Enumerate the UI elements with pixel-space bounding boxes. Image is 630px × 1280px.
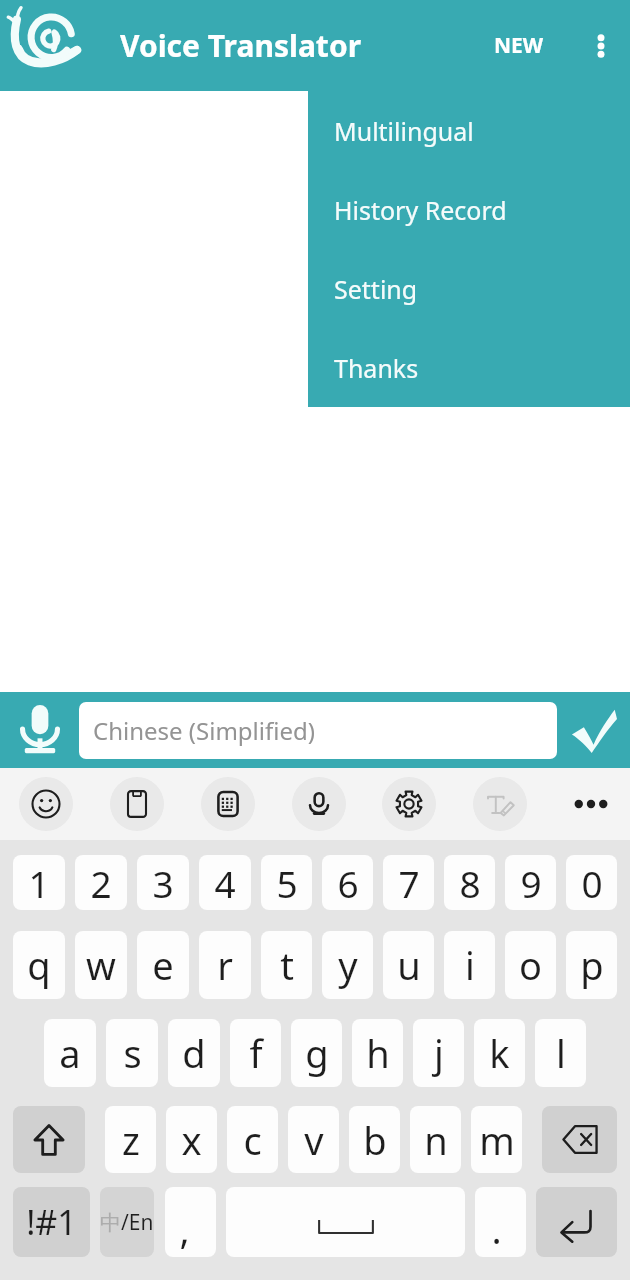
button[interactable]: 7 — [383, 855, 434, 910]
staticText: 3 — [152, 858, 174, 908]
button[interactable]: t — [261, 931, 312, 999]
button[interactable]: Multilingual — [308, 91, 630, 170]
button[interactable]: Setting — [308, 249, 630, 328]
staticText: 4 — [214, 858, 236, 908]
staticText: Voice Translator — [120, 25, 362, 66]
staticText: f — [249, 1027, 263, 1079]
staticText: b — [363, 1114, 387, 1166]
button[interactable]: 2 — [75, 855, 127, 910]
staticText: NEW — [494, 31, 544, 60]
button[interactable]: Confirm — [557, 692, 630, 768]
button[interactable]: App logo — [0, 0, 120, 91]
staticText: 7 — [398, 858, 420, 908]
button[interactable]: x — [166, 1106, 217, 1173]
button[interactable]: Chinese (Simplified) — [79, 702, 557, 759]
button[interactable]: h — [352, 1019, 403, 1087]
staticText: j — [434, 1027, 444, 1079]
staticText: Chinese (Simplified) — [93, 714, 315, 747]
staticText: r — [217, 939, 233, 991]
staticText: g — [305, 1027, 329, 1079]
button[interactable]: Handwriting — [473, 777, 527, 831]
button[interactable]: 1 — [13, 855, 65, 910]
button[interactable]: l — [535, 1019, 586, 1087]
staticText: e — [152, 939, 174, 991]
button[interactable]: u — [383, 931, 434, 999]
button[interactable]: More — [564, 777, 618, 831]
staticText: 5 — [276, 858, 298, 908]
staticText: /En — [121, 1208, 154, 1237]
button[interactable]: b — [349, 1106, 400, 1173]
staticText: o — [519, 939, 542, 991]
button[interactable]: 4 — [199, 855, 251, 910]
button[interactable]: 8 — [444, 855, 495, 910]
button[interactable]: Voice input — [292, 777, 346, 831]
button[interactable]: Keyboard layout — [201, 777, 255, 831]
button[interactable]: k — [474, 1019, 525, 1087]
button[interactable]: p — [566, 931, 617, 999]
staticText: !#1 — [26, 1199, 77, 1245]
staticText: 6 — [337, 858, 359, 908]
button[interactable]: w — [75, 931, 127, 999]
button[interactable]: , — [165, 1187, 216, 1257]
staticText: . — [491, 1203, 502, 1255]
staticText: History Record — [334, 193, 507, 227]
button[interactable]: r — [199, 931, 251, 999]
button[interactable]: e — [137, 931, 189, 999]
button[interactable]: More options — [572, 0, 630, 91]
button[interactable]: j — [413, 1019, 464, 1087]
button[interactable]: Enter — [536, 1187, 617, 1257]
button[interactable]: 3 — [137, 855, 189, 910]
button[interactable]: m — [471, 1106, 522, 1173]
button[interactable]: Thanks — [308, 328, 630, 407]
button[interactable]: . — [475, 1187, 526, 1257]
button[interactable]: Backspace — [542, 1106, 617, 1173]
button[interactable]: i — [444, 931, 495, 999]
staticText: l — [556, 1027, 566, 1079]
button[interactable]: ZhEn — [100, 1187, 154, 1257]
button[interactable]: 0 — [566, 855, 617, 910]
button[interactable]: Space — [226, 1187, 465, 1257]
button[interactable]: d — [168, 1019, 220, 1087]
button[interactable]: n — [410, 1106, 461, 1173]
staticText: z — [122, 1114, 140, 1166]
staticText: m — [479, 1114, 515, 1166]
staticText: t — [280, 939, 294, 991]
button[interactable]: Emoji — [19, 777, 73, 831]
staticText: Setting — [334, 272, 418, 306]
staticText: k — [489, 1027, 510, 1079]
staticText: s — [123, 1027, 142, 1079]
button[interactable]: q — [13, 931, 65, 999]
staticText: 1 — [28, 858, 50, 908]
staticText: 2 — [90, 858, 112, 908]
staticText: x — [181, 1114, 202, 1166]
button[interactable]: f — [230, 1019, 281, 1087]
button[interactable]: Shift — [13, 1106, 85, 1173]
button[interactable]: Clipboard — [110, 777, 164, 831]
button[interactable]: a — [44, 1019, 96, 1087]
staticText: 0 — [581, 858, 603, 908]
staticText: i — [465, 939, 475, 991]
staticText: 中 — [100, 1210, 121, 1236]
button[interactable]: y — [322, 931, 373, 999]
button[interactable]: 9 — [505, 855, 556, 910]
button[interactable]: !#1 — [13, 1187, 90, 1257]
staticText: v — [304, 1114, 324, 1166]
staticText: w — [86, 939, 116, 991]
button[interactable]: c — [227, 1106, 278, 1173]
button[interactable]: s — [106, 1019, 158, 1087]
staticText: a — [59, 1027, 81, 1079]
button[interactable]: Voice input — [0, 692, 79, 768]
staticText: n — [424, 1114, 448, 1166]
staticText: h — [366, 1027, 390, 1079]
button[interactable]: 6 — [322, 855, 373, 910]
staticText: u — [397, 939, 421, 991]
button[interactable]: z — [105, 1106, 156, 1173]
button[interactable]: g — [291, 1019, 342, 1087]
button[interactable]: v — [288, 1106, 339, 1173]
button[interactable]: NEW — [478, 19, 560, 72]
button[interactable]: o — [505, 931, 556, 999]
button[interactable]: 5 — [261, 855, 312, 910]
button[interactable]: Settings — [382, 777, 436, 831]
button[interactable]: History Record — [308, 170, 630, 249]
staticText: y — [338, 939, 358, 991]
